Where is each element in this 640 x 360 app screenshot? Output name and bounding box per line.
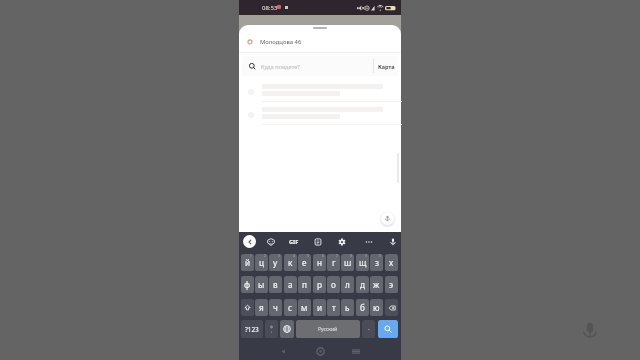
button[interactable] xyxy=(239,104,401,125)
button[interactable]: ш xyxy=(341,254,354,271)
staticText: GIF xyxy=(289,238,299,246)
button[interactable]: Stickers xyxy=(264,235,277,248)
staticText: 6 xyxy=(322,254,324,258)
button[interactable]: ?123 xyxy=(241,320,263,338)
staticText: б xyxy=(360,302,365,313)
button[interactable]: л xyxy=(341,276,354,293)
button[interactable]: г xyxy=(327,254,340,271)
staticText: 5 xyxy=(307,254,309,258)
button[interactable]: ь xyxy=(341,299,354,316)
button[interactable]: я xyxy=(255,299,268,316)
button[interactable]: Voice input xyxy=(381,212,394,225)
staticText: 3 xyxy=(278,254,280,258)
button[interactable]: Clipboard xyxy=(311,235,324,248)
button[interactable]: Shift xyxy=(241,299,254,316)
staticText: п xyxy=(302,279,307,290)
button[interactable]: Voice typing xyxy=(386,235,399,248)
button[interactable]: ж xyxy=(370,276,383,293)
staticText: о xyxy=(331,279,336,290)
staticText: Карта xyxy=(378,63,395,70)
button[interactable]: б xyxy=(356,299,369,316)
button[interactable]: х xyxy=(385,254,398,271)
staticText: 7 xyxy=(336,254,338,258)
staticText: 08:53 xyxy=(262,4,278,12)
staticText: Куда поедете? xyxy=(261,63,300,71)
staticText: й xyxy=(245,257,251,268)
button[interactable]: е xyxy=(298,254,311,271)
staticText: ь xyxy=(345,302,350,313)
staticText: у xyxy=(273,257,278,268)
staticText: ч xyxy=(273,302,278,313)
staticText: ю xyxy=(373,302,380,313)
button[interactable]: Settings xyxy=(335,235,348,248)
button[interactable]: More options xyxy=(362,235,375,248)
staticText: е xyxy=(302,257,307,268)
button[interactable]: Home xyxy=(312,343,328,359)
staticText: ш xyxy=(344,257,352,268)
staticText: 8 xyxy=(350,254,352,258)
staticText: д xyxy=(360,279,365,290)
button[interactable]: Comma xyxy=(265,320,278,338)
staticText: и xyxy=(317,302,323,313)
button[interactable]: м xyxy=(298,299,311,316)
staticText: 1 xyxy=(250,254,252,258)
staticText: я xyxy=(259,302,264,313)
button[interactable]: й xyxy=(241,254,254,271)
staticText: с xyxy=(288,302,293,313)
button[interactable]: щ xyxy=(356,254,369,271)
staticText: . xyxy=(368,323,370,333)
staticText: 9 xyxy=(365,254,367,258)
staticText: 0 xyxy=(379,254,381,258)
button[interactable]: и xyxy=(313,299,326,316)
button[interactable]: ы xyxy=(255,276,268,293)
staticText: ф xyxy=(244,279,251,290)
button[interactable]: а xyxy=(284,276,297,293)
button[interactable]: э xyxy=(385,276,398,293)
button[interactable]: у xyxy=(269,254,282,271)
staticText: Русский xyxy=(318,326,338,333)
staticText: р xyxy=(317,279,322,290)
button[interactable]: GIF xyxy=(287,235,300,248)
staticText: л xyxy=(345,279,350,290)
button[interactable]: Карта xyxy=(374,56,398,76)
button[interactable]: Backspace xyxy=(385,299,398,316)
staticText: г xyxy=(332,257,336,268)
button[interactable]: с xyxy=(284,299,297,316)
button[interactable] xyxy=(239,81,401,102)
button[interactable]: з xyxy=(370,254,383,271)
button[interactable]: ц xyxy=(255,254,268,271)
button[interactable]: Back xyxy=(275,343,291,359)
button[interactable]: д xyxy=(356,276,369,293)
staticText: в xyxy=(273,279,278,290)
button[interactable]: Recent apps xyxy=(348,343,364,359)
staticText: а xyxy=(288,279,293,290)
button[interactable]: Change language xyxy=(280,320,294,338)
staticText: м xyxy=(301,302,308,313)
staticText: ы xyxy=(258,279,265,290)
button[interactable]: ф xyxy=(241,276,254,293)
staticText: э xyxy=(389,279,394,290)
button[interactable]: . xyxy=(362,320,375,338)
staticText: х xyxy=(389,257,394,268)
staticText: н xyxy=(317,257,323,268)
staticText: ц xyxy=(259,257,265,268)
button[interactable]: Search xyxy=(378,320,398,338)
button[interactable]: Hide toolbar xyxy=(243,235,256,248)
button[interactable]: ю xyxy=(370,299,383,316)
staticText: щ xyxy=(359,257,367,268)
staticText: Молодцова 46 xyxy=(260,38,302,46)
button[interactable]: к xyxy=(284,254,297,271)
button[interactable]: ч xyxy=(269,299,282,316)
button[interactable]: п xyxy=(298,276,311,293)
staticText: 2 xyxy=(264,254,266,258)
staticText: 4 xyxy=(293,254,295,258)
button[interactable]: т xyxy=(327,299,340,316)
button[interactable]: Русский xyxy=(296,320,360,338)
staticText: т xyxy=(332,302,336,313)
button[interactable]: р xyxy=(313,276,326,293)
button[interactable]: н xyxy=(313,254,326,271)
button[interactable]: о xyxy=(327,276,340,293)
button[interactable]: в xyxy=(269,276,282,293)
staticText: ?123 xyxy=(245,325,259,334)
button[interactable]: Молодцова 46 xyxy=(239,32,401,51)
